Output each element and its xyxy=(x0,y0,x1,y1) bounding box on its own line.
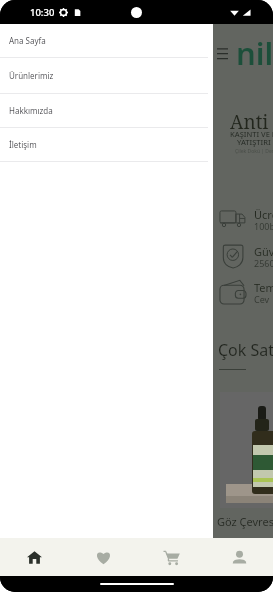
staticText: YATIŞTIRI xyxy=(237,137,271,147)
staticText: Çilek Dokü | Des xyxy=(235,148,273,155)
staticText: 10:30 xyxy=(30,6,55,19)
staticText: 2560 xyxy=(254,257,273,269)
staticText: Tem xyxy=(254,280,273,295)
staticText: Çok Sat xyxy=(218,339,273,361)
staticText: Ana Sayfa xyxy=(9,35,46,46)
staticText: Hakkımızda xyxy=(9,105,53,116)
button[interactable] xyxy=(220,392,273,508)
staticText: KAŞINTI VE K xyxy=(230,129,273,139)
staticText: Anti xyxy=(230,109,269,135)
button[interactable]: Hakkımızda xyxy=(0,94,213,127)
staticText: Cev xyxy=(254,293,270,305)
button[interactable]: İletişim xyxy=(0,128,213,161)
button[interactable]: Cart xyxy=(137,538,205,576)
staticText: İletişim xyxy=(9,139,37,150)
button[interactable]: Home xyxy=(0,538,69,576)
staticText: Ürünlerimiz xyxy=(9,70,54,81)
button[interactable]: Ürünlerimiz xyxy=(0,58,213,93)
button[interactable]: Profile xyxy=(205,538,273,576)
button[interactable]: Ana Sayfa xyxy=(0,24,213,57)
staticText: Ücre xyxy=(254,207,273,222)
button[interactable]: Favorites xyxy=(69,538,137,576)
staticText: 100b xyxy=(254,220,273,232)
staticText: nil xyxy=(236,32,273,74)
staticText: Güve xyxy=(254,244,273,259)
button[interactable]: Menu xyxy=(215,46,229,60)
staticText: Göz Çevres xyxy=(217,514,273,529)
